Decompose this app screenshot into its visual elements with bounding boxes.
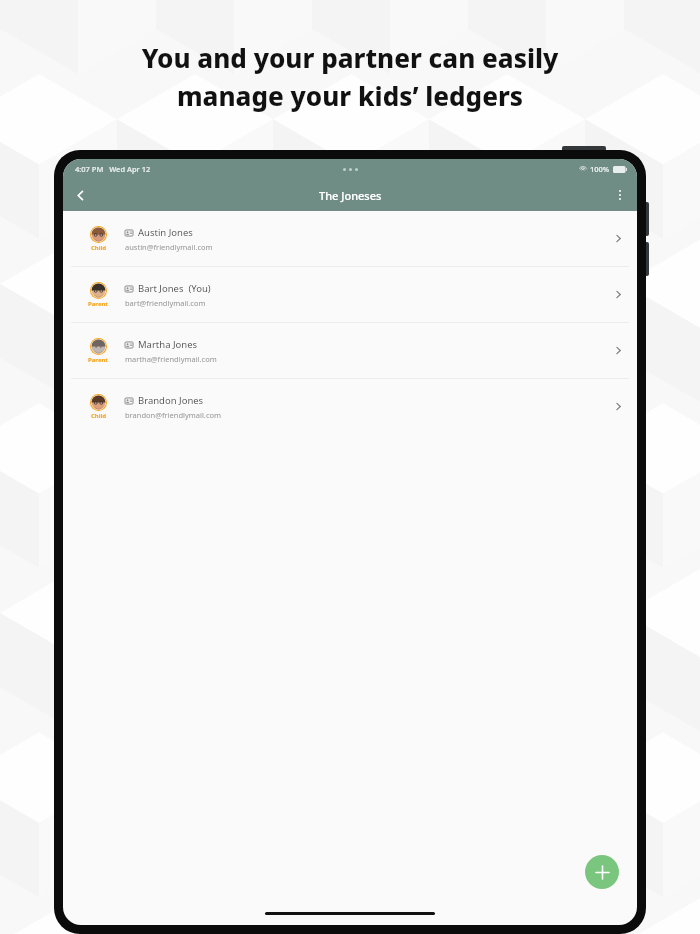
button[interactable]: Add member (585, 855, 619, 889)
staticText: Martha Jones (138, 338, 198, 351)
staticText: Brandon Jones (138, 394, 204, 407)
staticText: Parent (88, 300, 108, 308)
staticText: bart@friendlymail.com (125, 298, 206, 308)
staticText: The Joneses (319, 188, 382, 203)
button[interactable]: Back (67, 182, 93, 208)
staticText: austin@friendlymail.com (125, 242, 213, 252)
button[interactable]: Child (63, 379, 637, 434)
staticText: Parent (88, 356, 108, 364)
staticText: 100% (590, 164, 610, 174)
staticText: You and your partner can easily manage y… (0, 40, 700, 113)
staticText: Bart Jones (You) (138, 282, 211, 295)
staticText: martha@friendlymail.com (125, 354, 217, 364)
staticText: brandon@friendlymail.com (125, 410, 222, 420)
button[interactable]: Parent (63, 267, 637, 322)
staticText: 4:07 PM Wed Apr 12 (75, 164, 151, 174)
staticText: Austin Jones (138, 226, 193, 239)
button[interactable]: Child (63, 211, 637, 266)
button[interactable]: More options (607, 182, 633, 208)
staticText: Child (91, 412, 107, 420)
staticText: Child (91, 244, 107, 252)
button[interactable]: Parent (63, 323, 637, 378)
